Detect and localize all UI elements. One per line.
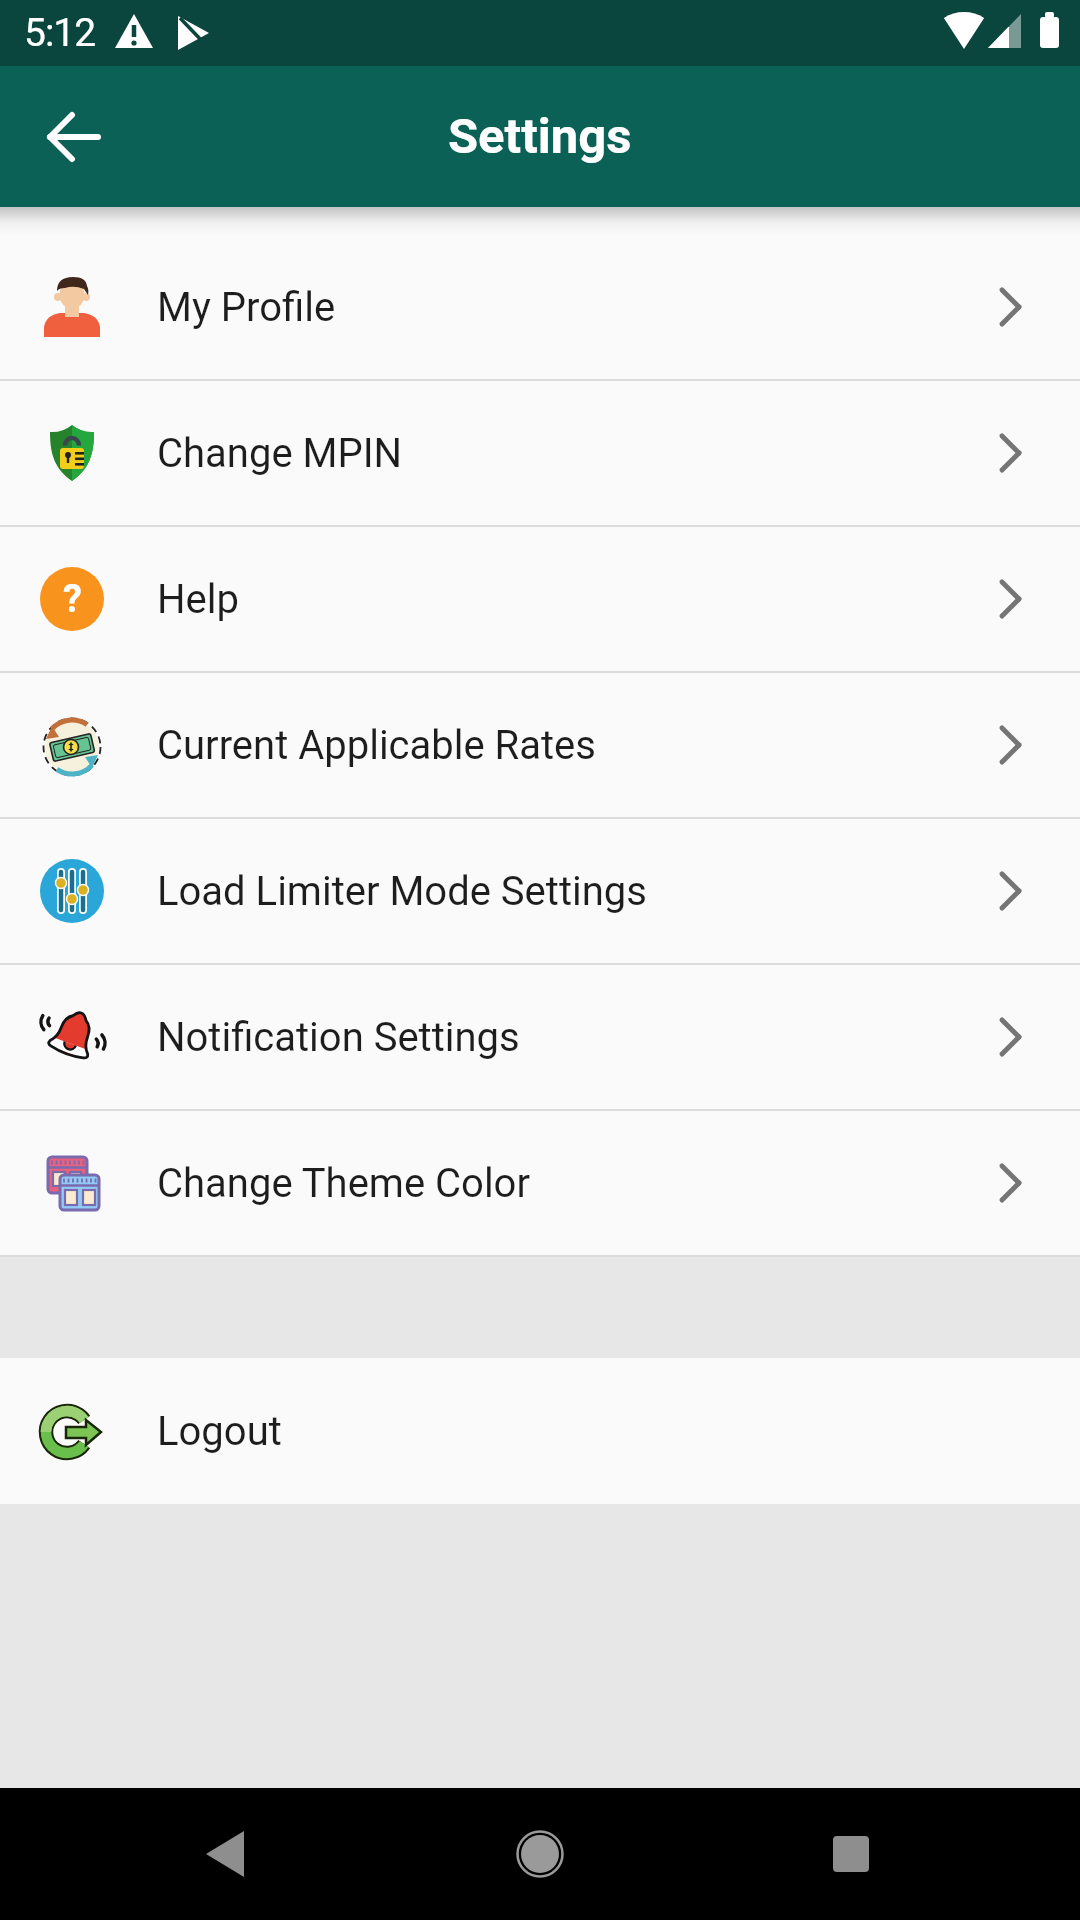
staticText: Logout xyxy=(157,1408,282,1455)
staticText: Load Limiter Mode Settings xyxy=(157,868,647,915)
staticText: 5:12 xyxy=(24,10,96,56)
button[interactable]: Logout xyxy=(0,1358,1080,1504)
button[interactable]: Change MPIN xyxy=(0,381,1080,525)
button[interactable] xyxy=(803,1806,899,1902)
button[interactable]: Change Theme Color xyxy=(0,1111,1080,1255)
button[interactable] xyxy=(178,1806,274,1902)
staticText: Notification Settings xyxy=(157,1014,520,1061)
staticText: Help xyxy=(157,576,239,623)
staticText: Current Applicable Rates xyxy=(157,722,596,769)
button[interactable] xyxy=(492,1806,588,1902)
staticText: ? xyxy=(63,577,82,622)
staticText: My Profile xyxy=(157,284,336,331)
staticText: Change MPIN xyxy=(157,430,403,477)
button[interactable]: Current Applicable Rates xyxy=(0,673,1080,817)
staticText: Settings xyxy=(448,108,632,165)
button[interactable]: ? xyxy=(0,527,1080,671)
button[interactable] xyxy=(30,93,118,181)
button[interactable]: Notification Settings xyxy=(0,965,1080,1109)
staticText: Change Theme Color xyxy=(157,1160,530,1207)
button[interactable]: Load Limiter Mode Settings xyxy=(0,819,1080,963)
button[interactable]: My Profile xyxy=(0,235,1080,379)
